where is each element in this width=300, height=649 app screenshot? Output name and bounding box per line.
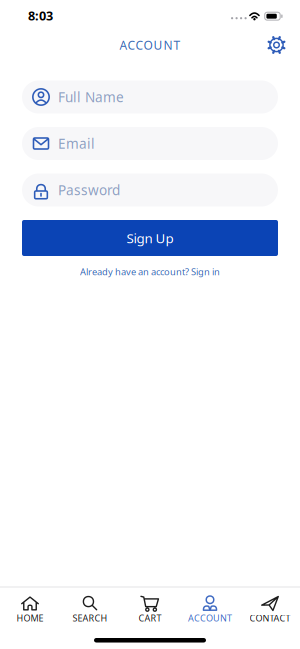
staticText: Sign Up — [126, 229, 173, 247]
staticText: Already have an account? Sign in — [80, 265, 220, 278]
button[interactable]: Email — [22, 127, 278, 160]
button[interactable]: Password — [22, 173, 278, 206]
button[interactable]: ACCOUNT — [180, 592, 240, 626]
staticText: CONTACT — [249, 612, 290, 624]
staticText: Email — [58, 134, 95, 153]
button[interactable]: Full Name — [22, 80, 278, 113]
button[interactable]: SEARCH — [60, 592, 120, 626]
button[interactable]: Settings — [265, 33, 288, 56]
button[interactable]: Already have an account? Sign in — [80, 265, 220, 278]
button[interactable]: HOME — [0, 592, 60, 626]
button[interactable]: CONTACT — [240, 592, 300, 626]
staticText: SEARCH — [72, 612, 107, 624]
staticText: HOME — [16, 612, 43, 624]
staticText: ACCOUNT — [119, 37, 180, 53]
staticText: ACCOUNT — [188, 612, 232, 624]
button[interactable]: CART — [120, 592, 180, 626]
staticText: Password — [58, 181, 120, 199]
staticText: CART — [138, 612, 161, 624]
staticText: Full Name — [58, 88, 124, 106]
button[interactable]: Sign Up — [22, 220, 278, 256]
staticText: 8:03 — [28, 7, 53, 24]
